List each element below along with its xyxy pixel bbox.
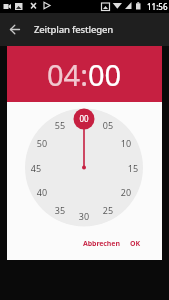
staticText: 00 xyxy=(76,113,92,124)
staticText: 30 xyxy=(76,210,92,222)
staticText: 11:56 xyxy=(147,1,168,12)
staticText: 15 xyxy=(125,162,141,174)
staticText: 35 xyxy=(52,204,68,216)
staticText: Abbrechen xyxy=(83,239,120,249)
staticText: 50 xyxy=(34,137,50,149)
staticText: 10 xyxy=(118,137,134,149)
button[interactable]: Abbrechen xyxy=(81,236,122,252)
staticText: 40 xyxy=(34,186,50,198)
staticText: 04:00 xyxy=(47,55,122,94)
button[interactable]: OK xyxy=(128,236,143,252)
staticText: 55 xyxy=(52,119,68,131)
staticText: 05 xyxy=(100,119,116,131)
staticText: Zeitplan festlegen xyxy=(34,23,114,36)
staticText: 45 xyxy=(28,162,44,174)
button[interactable] xyxy=(0,16,28,44)
staticText: OK xyxy=(130,239,141,249)
staticText: 25 xyxy=(100,204,116,216)
staticText: 20 xyxy=(118,186,134,198)
button[interactable]: 04:00 xyxy=(7,46,162,102)
